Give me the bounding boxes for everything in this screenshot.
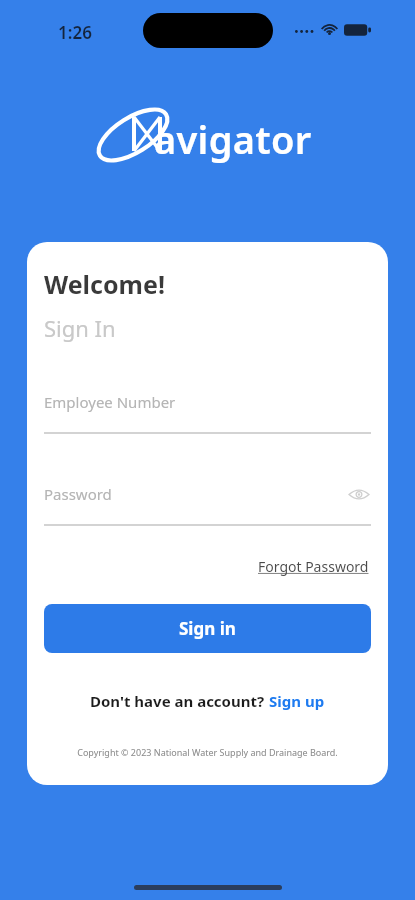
button[interactable]: Sign up (269, 691, 325, 711)
button[interactable]: Employee Number (44, 390, 371, 434)
button[interactable]: Sign in (44, 604, 371, 653)
staticText: Employee Number (44, 392, 176, 412)
staticText: Sign in (179, 617, 236, 640)
button[interactable]: Password (44, 482, 371, 526)
staticText: avigator (154, 113, 312, 165)
staticText: Forgot Password (258, 557, 369, 576)
staticText: Sign In (44, 313, 116, 343)
staticText: Sign up (269, 691, 325, 711)
staticText: Welcome! (44, 267, 165, 301)
button[interactable]: Forgot Password (256, 555, 371, 578)
button[interactable]: Show password (347, 482, 371, 506)
staticText: Password (44, 484, 112, 504)
staticText: Copyright © 2023 National Water Supply a… (77, 746, 338, 758)
staticText: 1:26 (58, 21, 92, 44)
staticText: Don't have an account? (90, 691, 269, 711)
